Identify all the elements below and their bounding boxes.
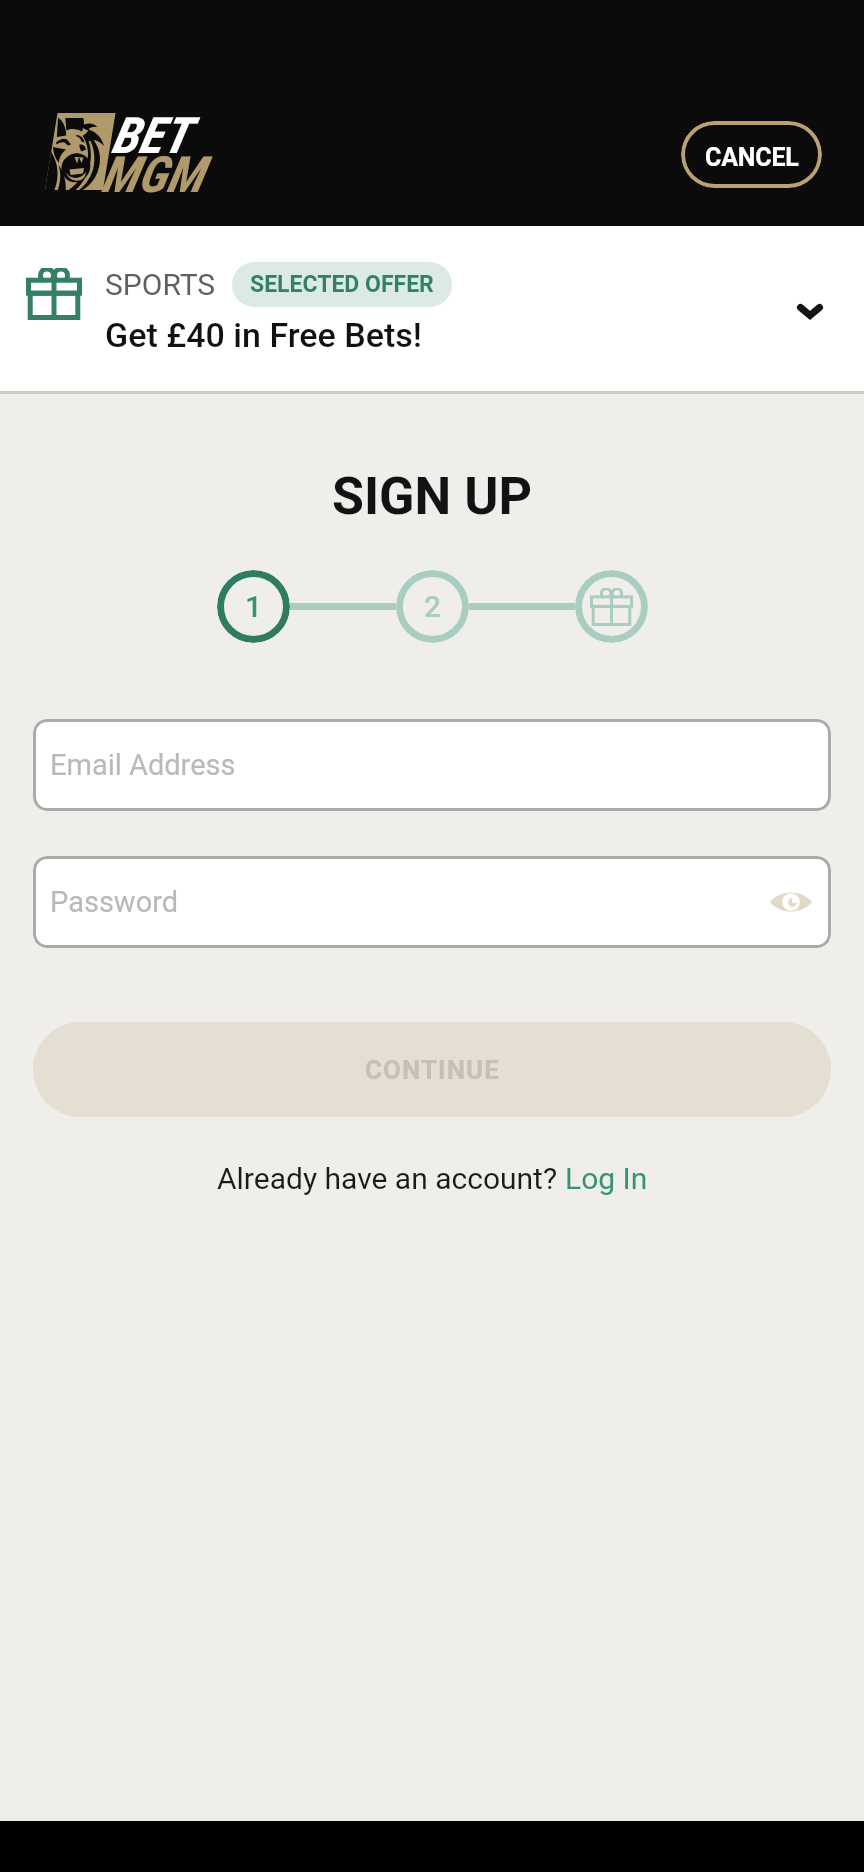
staticText: Already have an account? <box>217 1161 565 1196</box>
staticText: SPORTS <box>105 267 216 302</box>
button[interactable]: Email Address <box>33 719 831 811</box>
button[interactable]: SPORTS <box>0 226 864 391</box>
button[interactable]: Show password <box>765 876 817 928</box>
staticText: 2 <box>424 589 442 624</box>
staticText: Password <box>50 885 179 919</box>
staticText: Email Address <box>50 748 236 782</box>
staticText: Log In <box>565 1161 648 1196</box>
staticText: CANCEL <box>705 143 799 172</box>
other: BetMGM <box>45 113 210 197</box>
button[interactable]: Log In <box>565 1161 648 1196</box>
button[interactable]: Expand offer <box>782 283 838 339</box>
staticText: CONTINUE <box>365 1055 500 1085</box>
button[interactable]: CANCEL <box>681 121 822 188</box>
staticText: SIGN UP <box>0 466 864 527</box>
button[interactable]: CONTINUE <box>33 1022 831 1117</box>
staticText: SELECTED OFFER <box>250 271 434 298</box>
staticText: BET <box>111 107 189 166</box>
button[interactable]: Password <box>33 856 831 948</box>
staticText: 1 <box>245 589 263 624</box>
staticText: Get £40 in Free Bets! <box>105 315 422 355</box>
staticText: MGM <box>101 146 203 205</box>
